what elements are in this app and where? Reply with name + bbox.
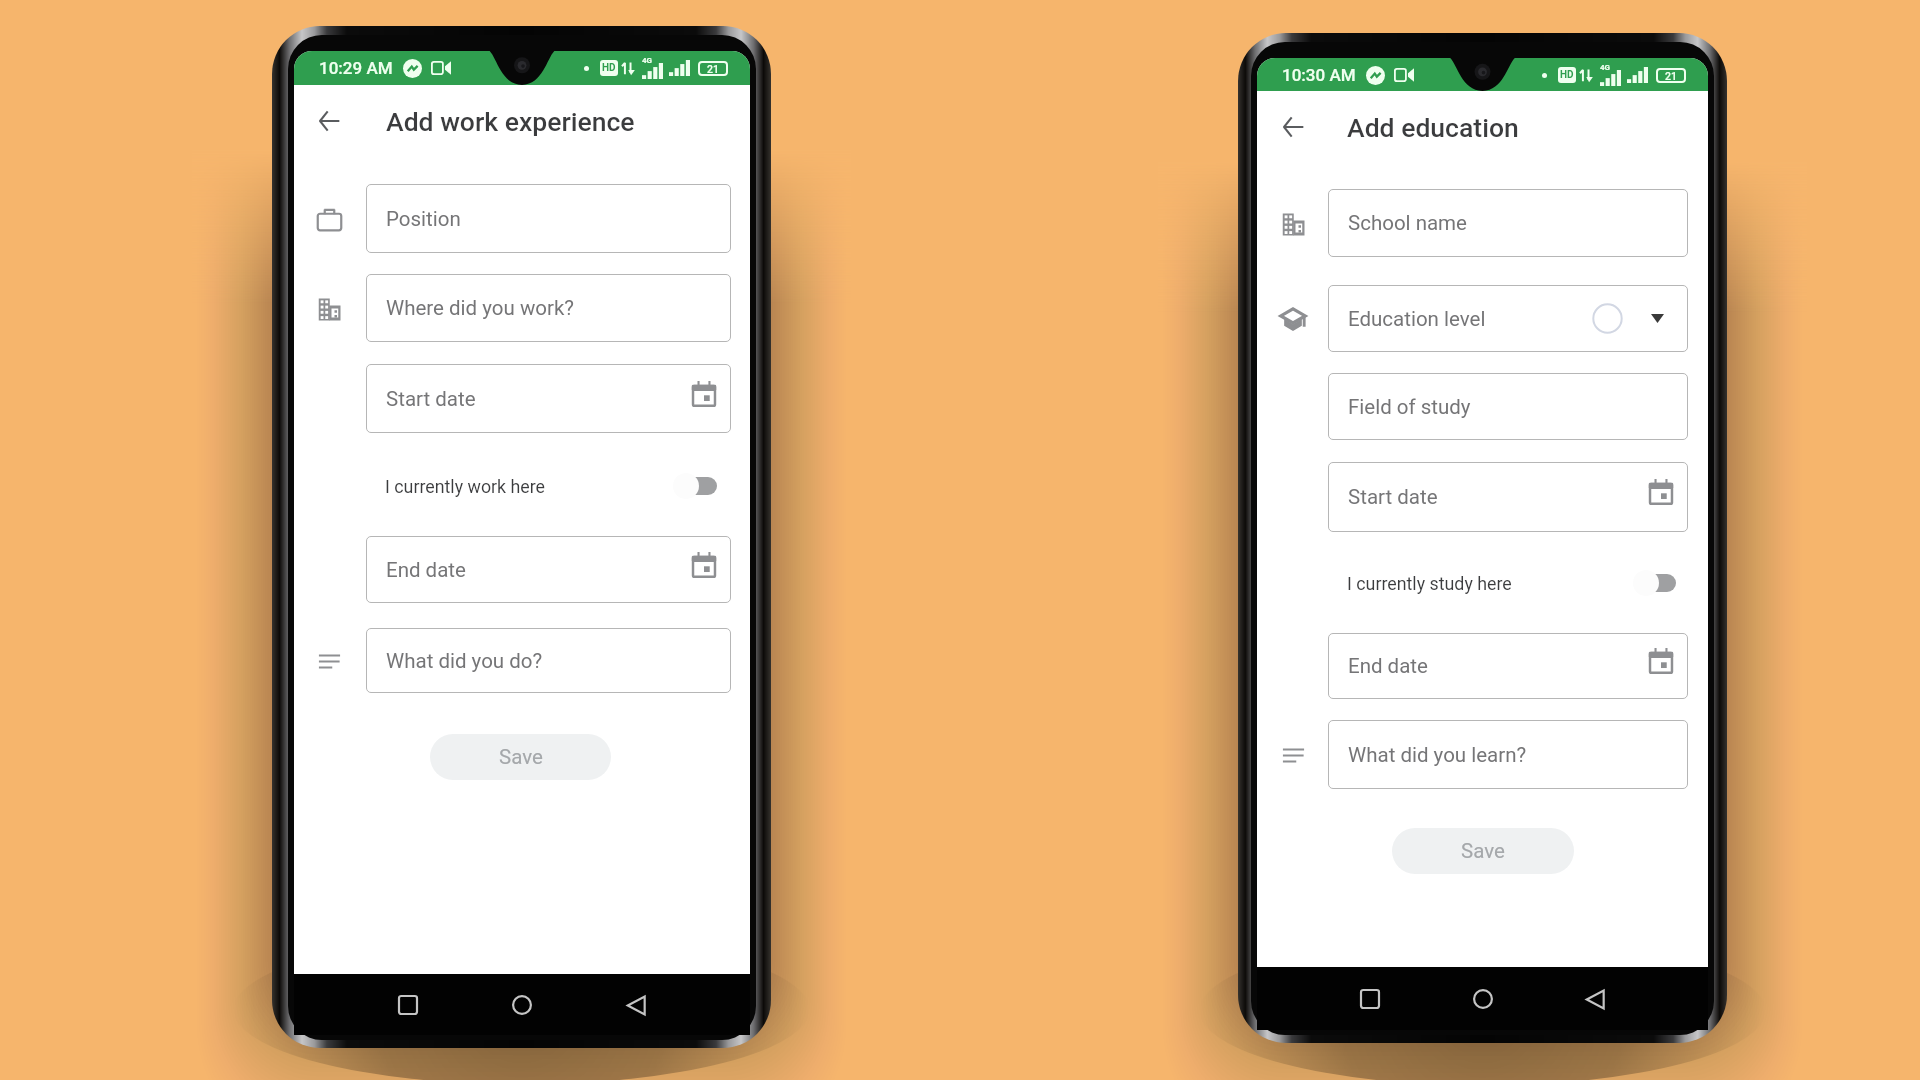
- button[interactable]: Home: [498, 981, 546, 1029]
- staticText: What did you do?: [386, 649, 543, 673]
- button[interactable]: I currently study here: [1343, 559, 1684, 607]
- button[interactable]: Back: [1571, 975, 1619, 1023]
- button[interactable]: Where did you work?: [366, 274, 731, 342]
- staticText: 21: [1665, 70, 1677, 82]
- staticText: HD: [1560, 69, 1574, 81]
- button[interactable]: End date: [1328, 633, 1688, 699]
- button[interactable]: Education level: [1328, 285, 1688, 352]
- staticText: End date: [386, 558, 466, 582]
- button[interactable]: Save: [430, 734, 611, 780]
- button[interactable]: Recent apps: [1346, 975, 1394, 1023]
- staticText: Where did you work?: [386, 296, 575, 320]
- staticText: Start date: [1348, 485, 1438, 509]
- staticText: 10:30 AM: [1282, 65, 1356, 85]
- staticText: 4G: [1600, 63, 1611, 72]
- button[interactable]: Home: [1459, 975, 1507, 1023]
- staticText: I currently study here: [1347, 573, 1512, 594]
- staticText: Add education: [1347, 112, 1519, 143]
- button[interactable]: Field of study: [1328, 373, 1688, 440]
- staticText: 4G: [642, 56, 653, 65]
- staticText: Start date: [386, 387, 476, 411]
- staticText: Save: [499, 745, 543, 769]
- staticText: I currently work here: [385, 476, 546, 497]
- staticText: Field of study: [1348, 395, 1471, 419]
- staticText: End date: [1348, 654, 1428, 678]
- staticText: Add work experience: [386, 106, 635, 137]
- button[interactable]: Start date: [366, 364, 731, 433]
- button[interactable]: I currently work here: [381, 462, 725, 510]
- button[interactable]: Recent apps: [384, 981, 432, 1029]
- button[interactable]: Save: [1392, 828, 1574, 874]
- staticText: 21: [707, 63, 719, 75]
- staticText: School name: [1348, 211, 1467, 235]
- button[interactable]: Navigate back: [306, 98, 352, 144]
- staticText: HD: [602, 62, 616, 74]
- button[interactable]: Back: [612, 981, 660, 1029]
- button[interactable]: Navigate back: [1270, 104, 1316, 150]
- staticText: What did you learn?: [1348, 743, 1527, 767]
- button[interactable]: School name: [1328, 189, 1688, 257]
- staticText: Position: [386, 207, 461, 231]
- button[interactable]: Position: [366, 184, 731, 253]
- staticText: Save: [1461, 839, 1505, 863]
- staticText: Education level: [1348, 307, 1486, 331]
- button[interactable]: End date: [366, 536, 731, 603]
- staticText: 10:29 AM: [319, 58, 393, 78]
- button[interactable]: Start date: [1328, 462, 1688, 532]
- button[interactable]: What did you learn?: [1328, 720, 1688, 789]
- button[interactable]: What did you do?: [366, 628, 731, 693]
